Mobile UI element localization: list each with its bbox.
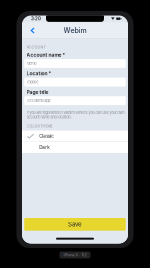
staticText: Page title <box>27 89 49 95</box>
button[interactable]: Dark <box>22 142 128 153</box>
staticText: ACCOUNT <box>27 45 46 49</box>
staticText: Webim <box>63 26 86 35</box>
staticText: Account name * <box>27 52 66 58</box>
staticText: iPhone X - 11.2 <box>63 253 86 257</box>
staticText: 3:20 <box>31 16 41 21</box>
staticText: Location * <box>27 71 52 77</box>
staticText: Dark <box>39 145 49 150</box>
staticText: Classic <box>39 133 54 139</box>
staticText: COLOR THEME <box>27 124 53 128</box>
staticText: mobile <box>27 80 38 84</box>
staticText: demo <box>27 61 36 66</box>
staticText: Save <box>68 221 82 228</box>
button[interactable]: Back <box>22 23 40 38</box>
staticText: iOS demo app <box>27 98 50 103</box>
button[interactable]: Classic <box>22 131 128 142</box>
button[interactable]: Save <box>24 218 126 231</box>
staticText: If you are registered in Webim service y… <box>27 110 125 119</box>
